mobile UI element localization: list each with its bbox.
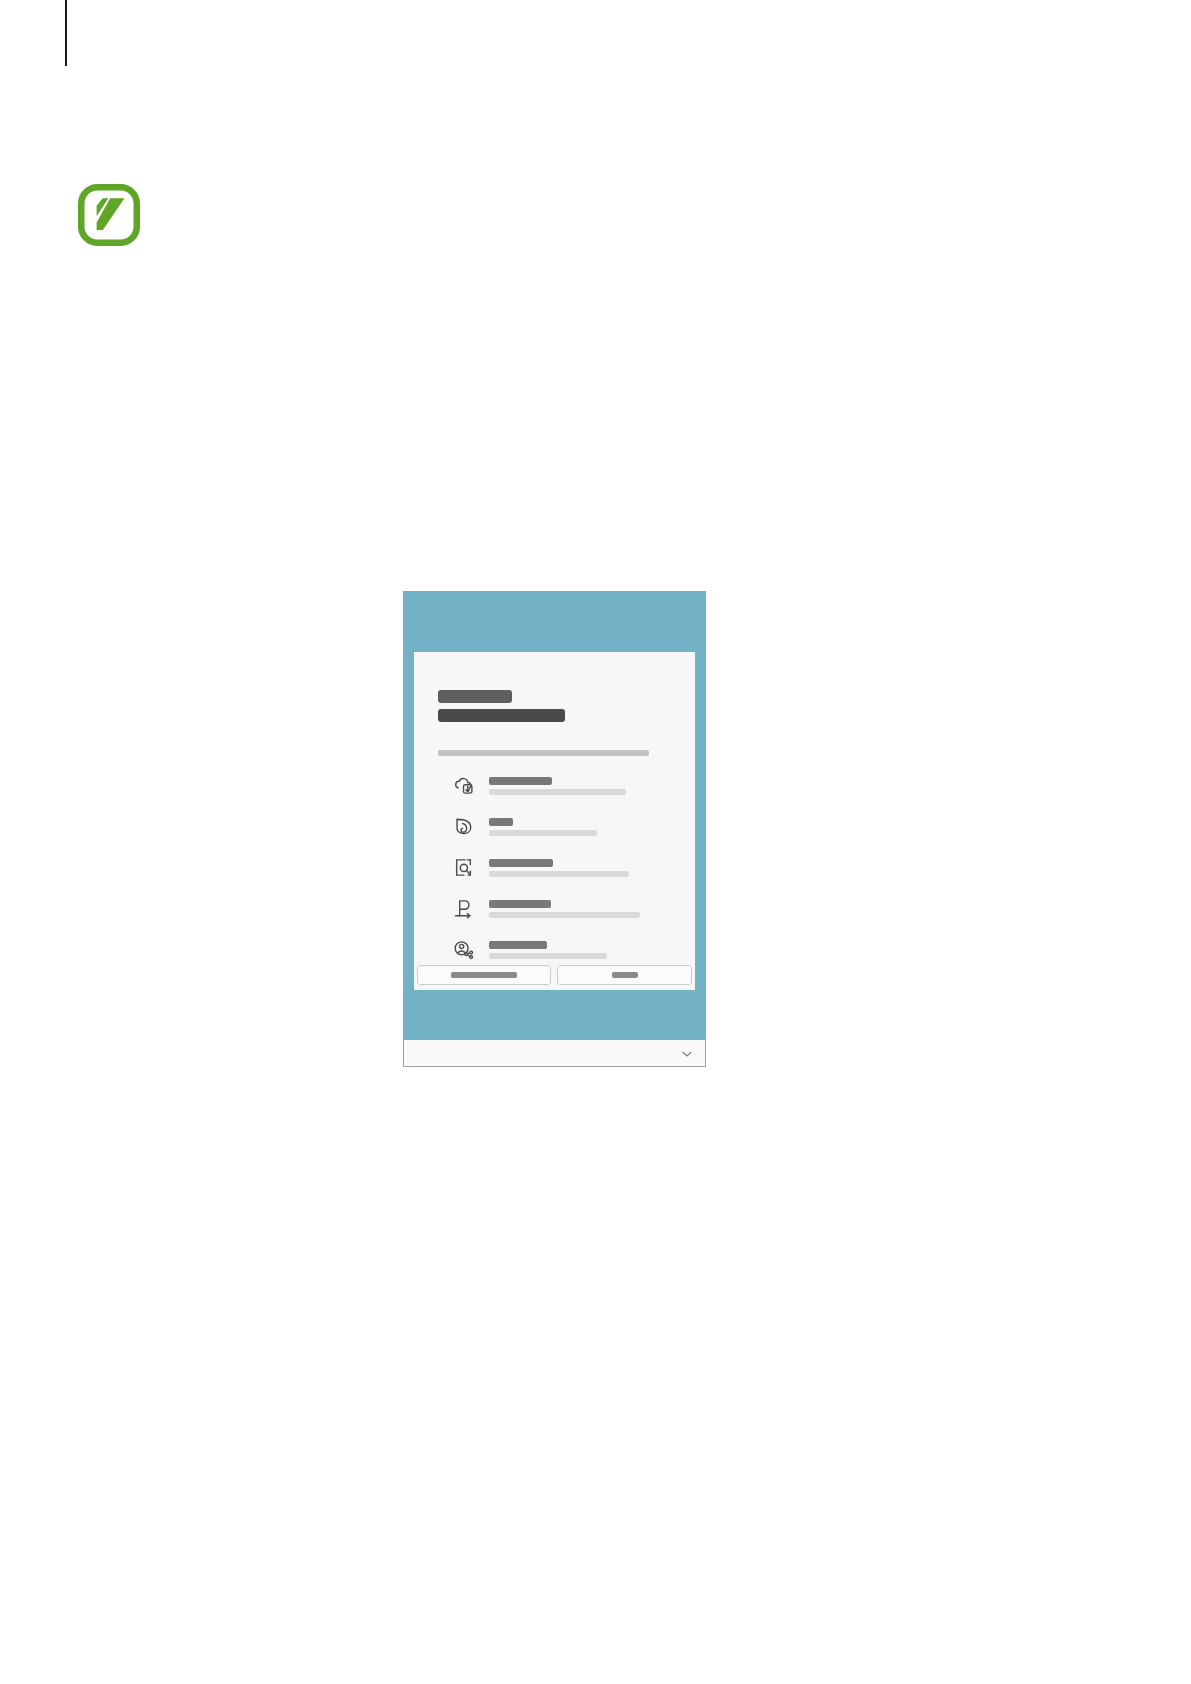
- button[interactable]: [414, 847, 695, 888]
- button[interactable]: [414, 888, 695, 929]
- button[interactable]: Create account: [417, 965, 551, 985]
- button[interactable]: Sign in: [557, 965, 692, 985]
- button[interactable]: [414, 929, 695, 970]
- button[interactable]: [414, 806, 695, 847]
- button[interactable]: Hide keyboard: [403, 1040, 706, 1067]
- button[interactable]: [414, 765, 695, 806]
